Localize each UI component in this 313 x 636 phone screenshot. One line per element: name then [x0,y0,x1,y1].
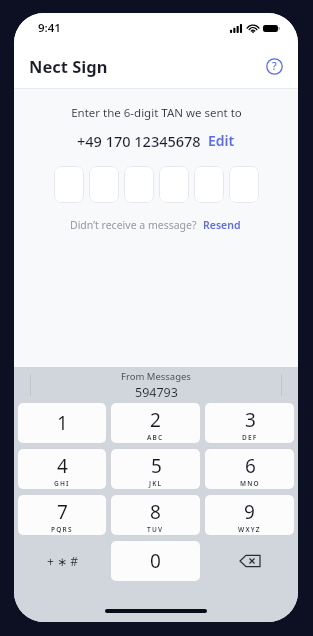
staticText: WXYZ [238,525,261,534]
button[interactable]: 5 [111,449,200,489]
staticText: Enter the 6-digit TAN we sent to [71,105,242,121]
staticText: 5 [151,453,162,479]
staticText: 594793 [135,384,178,401]
button[interactable]: 4 [18,449,106,489]
button[interactable] [124,166,154,203]
button[interactable]: 0 [111,541,200,581]
button[interactable]: Help [261,53,287,79]
button[interactable]: 7 [18,495,106,535]
staticText: Nect Sign [29,55,108,77]
staticText: 3 [245,407,256,433]
staticText: + ∗ # [47,553,78,569]
staticText: 0 [150,548,161,574]
staticText: 1 [57,410,68,436]
staticText: TUV [147,525,164,534]
button[interactable]: 9 [205,495,294,535]
staticText: DEF [242,433,258,442]
button[interactable] [89,166,119,203]
staticText: ? [272,59,277,73]
staticText: Resend [203,218,241,232]
button[interactable] [159,166,189,203]
staticText: GHI [54,479,70,488]
button[interactable]: + ∗ # [18,541,106,581]
staticText: 8 [150,499,161,525]
staticText: Didn’t receive a message? [70,218,197,232]
button[interactable] [194,166,224,203]
staticText: 4 [57,453,68,479]
staticText: PQRS [51,525,73,534]
button[interactable]: From Messages [14,367,298,403]
staticText: 7 [57,499,68,525]
staticText: From Messages [121,370,191,383]
button[interactable]: 8 [111,495,200,535]
button[interactable]: 1 [18,403,106,443]
staticText: 9:41 [38,20,61,36]
staticText: ABC [147,433,164,442]
button[interactable] [229,166,259,203]
staticText: MNO [240,479,260,488]
button[interactable]: Backspace [205,541,294,581]
staticText: JKL [149,479,163,488]
staticText: 6 [245,453,256,479]
staticText: 9 [244,499,255,525]
button[interactable]: Resend [202,216,242,234]
button[interactable]: Edit [207,129,236,152]
staticText: Edit [208,131,235,150]
button[interactable]: 6 [205,449,294,489]
button[interactable] [54,166,84,203]
button[interactable]: 2 [111,403,200,443]
button[interactable]: 3 [205,403,294,443]
staticText: +49 170 12345678 [77,131,201,151]
staticText: 2 [150,407,161,433]
